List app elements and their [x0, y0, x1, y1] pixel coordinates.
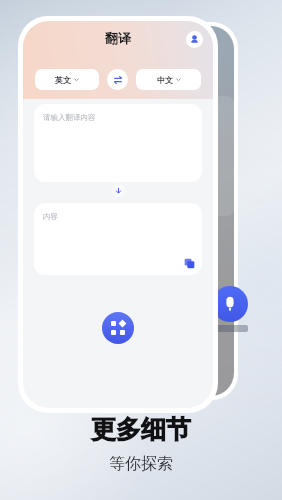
staticText: 中文 [157, 75, 173, 85]
staticText: 英文 [55, 75, 71, 85]
button[interactable]: 中文 [136, 69, 201, 90]
button[interactable]: Swap languages [107, 69, 128, 90]
button[interactable]: 内容 [34, 203, 202, 275]
staticText: 等你探索 [109, 454, 173, 474]
button[interactable]: More tools [102, 312, 134, 344]
button[interactable]: Copy [184, 258, 195, 269]
staticText: 更多细节 [91, 414, 191, 445]
staticText: 翻译 [105, 30, 131, 46]
button[interactable]: Translate [112, 184, 125, 197]
staticText: 内容 [43, 212, 58, 221]
button[interactable]: 英文 [35, 69, 99, 90]
button[interactable]: Profile [186, 31, 203, 48]
button[interactable]: Voice translate [212, 286, 248, 332]
staticText: 请输入翻译内容 [43, 113, 96, 122]
button[interactable]: 请输入翻译内容 [34, 104, 202, 182]
